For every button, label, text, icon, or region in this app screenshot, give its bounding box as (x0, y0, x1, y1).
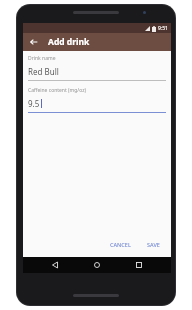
button[interactable]: Back (45, 257, 65, 273)
button[interactable]: Caffeine content (mg/oz) (28, 87, 166, 113)
button[interactable]: CANCEL (106, 238, 135, 251)
button[interactable]: Back (27, 35, 41, 49)
staticText: 9:51 (158, 25, 168, 32)
button[interactable]: Drink name (28, 55, 166, 81)
staticText: 9.5 (28, 98, 40, 109)
button[interactable]: Home (87, 257, 107, 273)
staticText: Caffeine content (mg/oz) (28, 87, 86, 94)
staticText: CANCEL (110, 241, 131, 248)
staticText: Drink name (28, 55, 56, 62)
button[interactable]: Recent apps (129, 257, 149, 273)
button[interactable]: SAVE (143, 238, 164, 251)
staticText: Red Bull (28, 66, 59, 77)
staticText: Add drink (48, 36, 90, 48)
staticText: SAVE (147, 241, 160, 248)
